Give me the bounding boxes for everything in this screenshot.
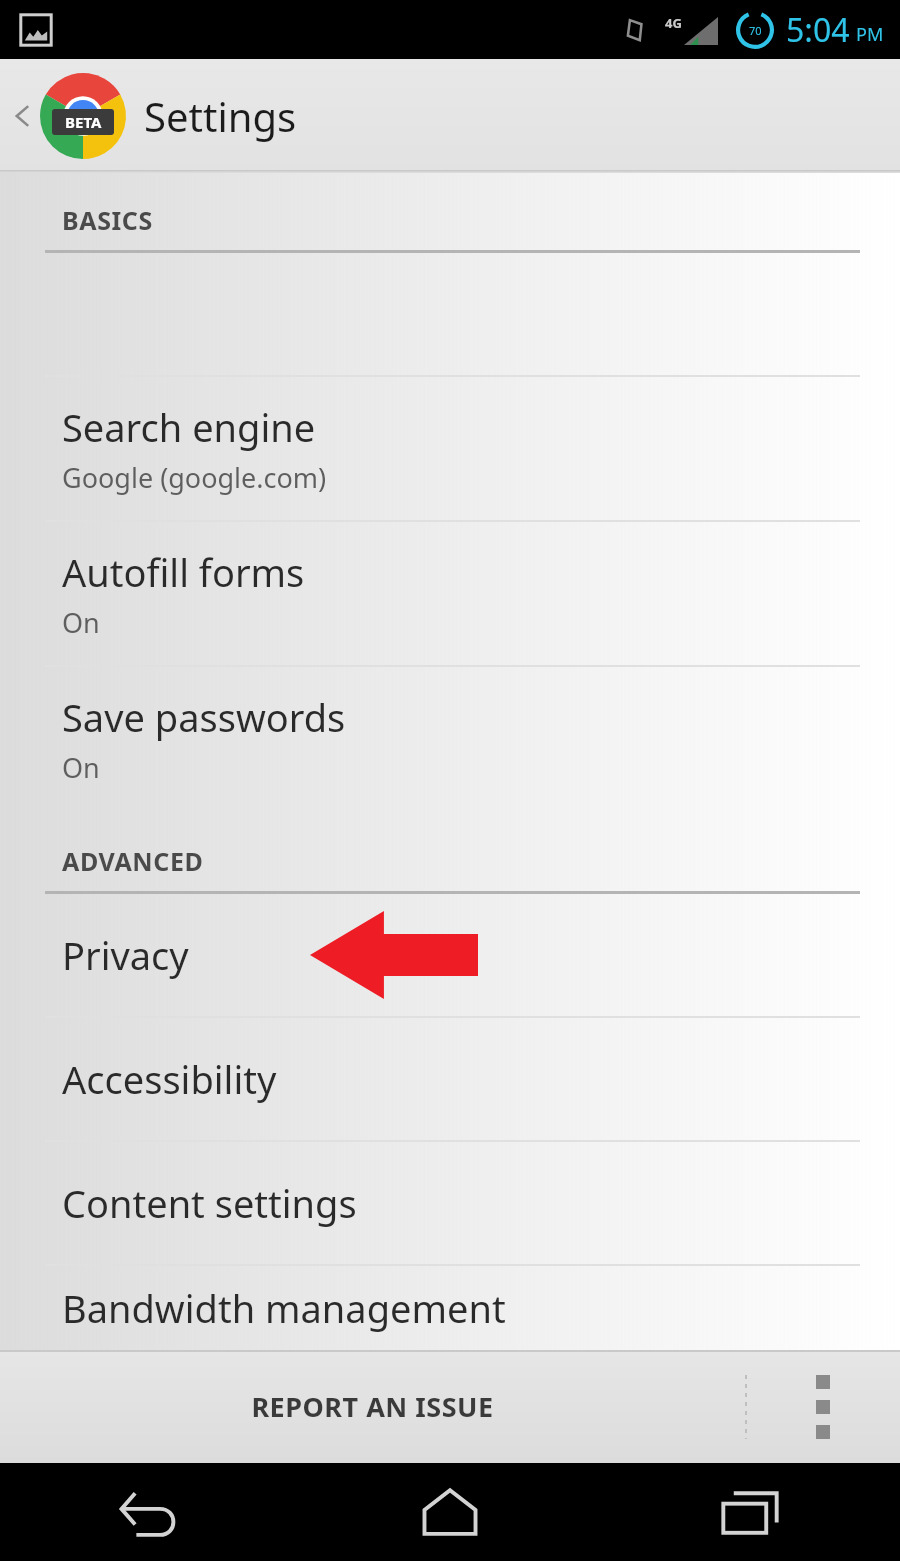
staticText: Privacy [62,929,189,981]
staticText: Bandwidth management [62,1282,506,1334]
staticText: Google (google.com) [62,459,327,496]
staticText: REPORT AN ISSUE [251,1388,494,1425]
button[interactable]: Home [300,1463,600,1561]
staticText: Save passwords [62,691,346,743]
staticText: Settings [144,89,297,143]
staticText: On [62,749,100,786]
button[interactable]: Search engine [0,377,900,520]
staticText: BETA [65,112,102,132]
staticText: 5:04 [786,8,850,52]
staticText: Autofill forms [62,546,305,598]
button[interactable]: Bandwidth management [0,1266,900,1350]
staticText: PM [856,22,884,47]
button[interactable]: REPORT AN ISSUE [0,1350,745,1463]
staticText: On [62,604,100,641]
staticText: ADVANCED [62,844,204,878]
button[interactable] [0,253,900,375]
staticText: BASICS [62,203,153,237]
staticText: Content settings [62,1177,357,1229]
staticText: Accessibility [62,1053,277,1105]
staticText: 70 [749,23,762,38]
button[interactable]: Content settings [0,1142,900,1264]
button[interactable]: Back [0,1463,300,1561]
button[interactable]: Navigate up [0,73,321,159]
button[interactable]: Recent apps [600,1463,900,1561]
button[interactable]: Autofill forms [0,522,900,665]
staticText: Search engine [62,401,316,453]
staticText: 4G [665,14,682,32]
button[interactable]: Save passwords [0,667,900,810]
button[interactable]: More options [745,1350,900,1463]
button[interactable]: Accessibility [0,1018,900,1140]
button[interactable]: Privacy [0,894,900,1016]
